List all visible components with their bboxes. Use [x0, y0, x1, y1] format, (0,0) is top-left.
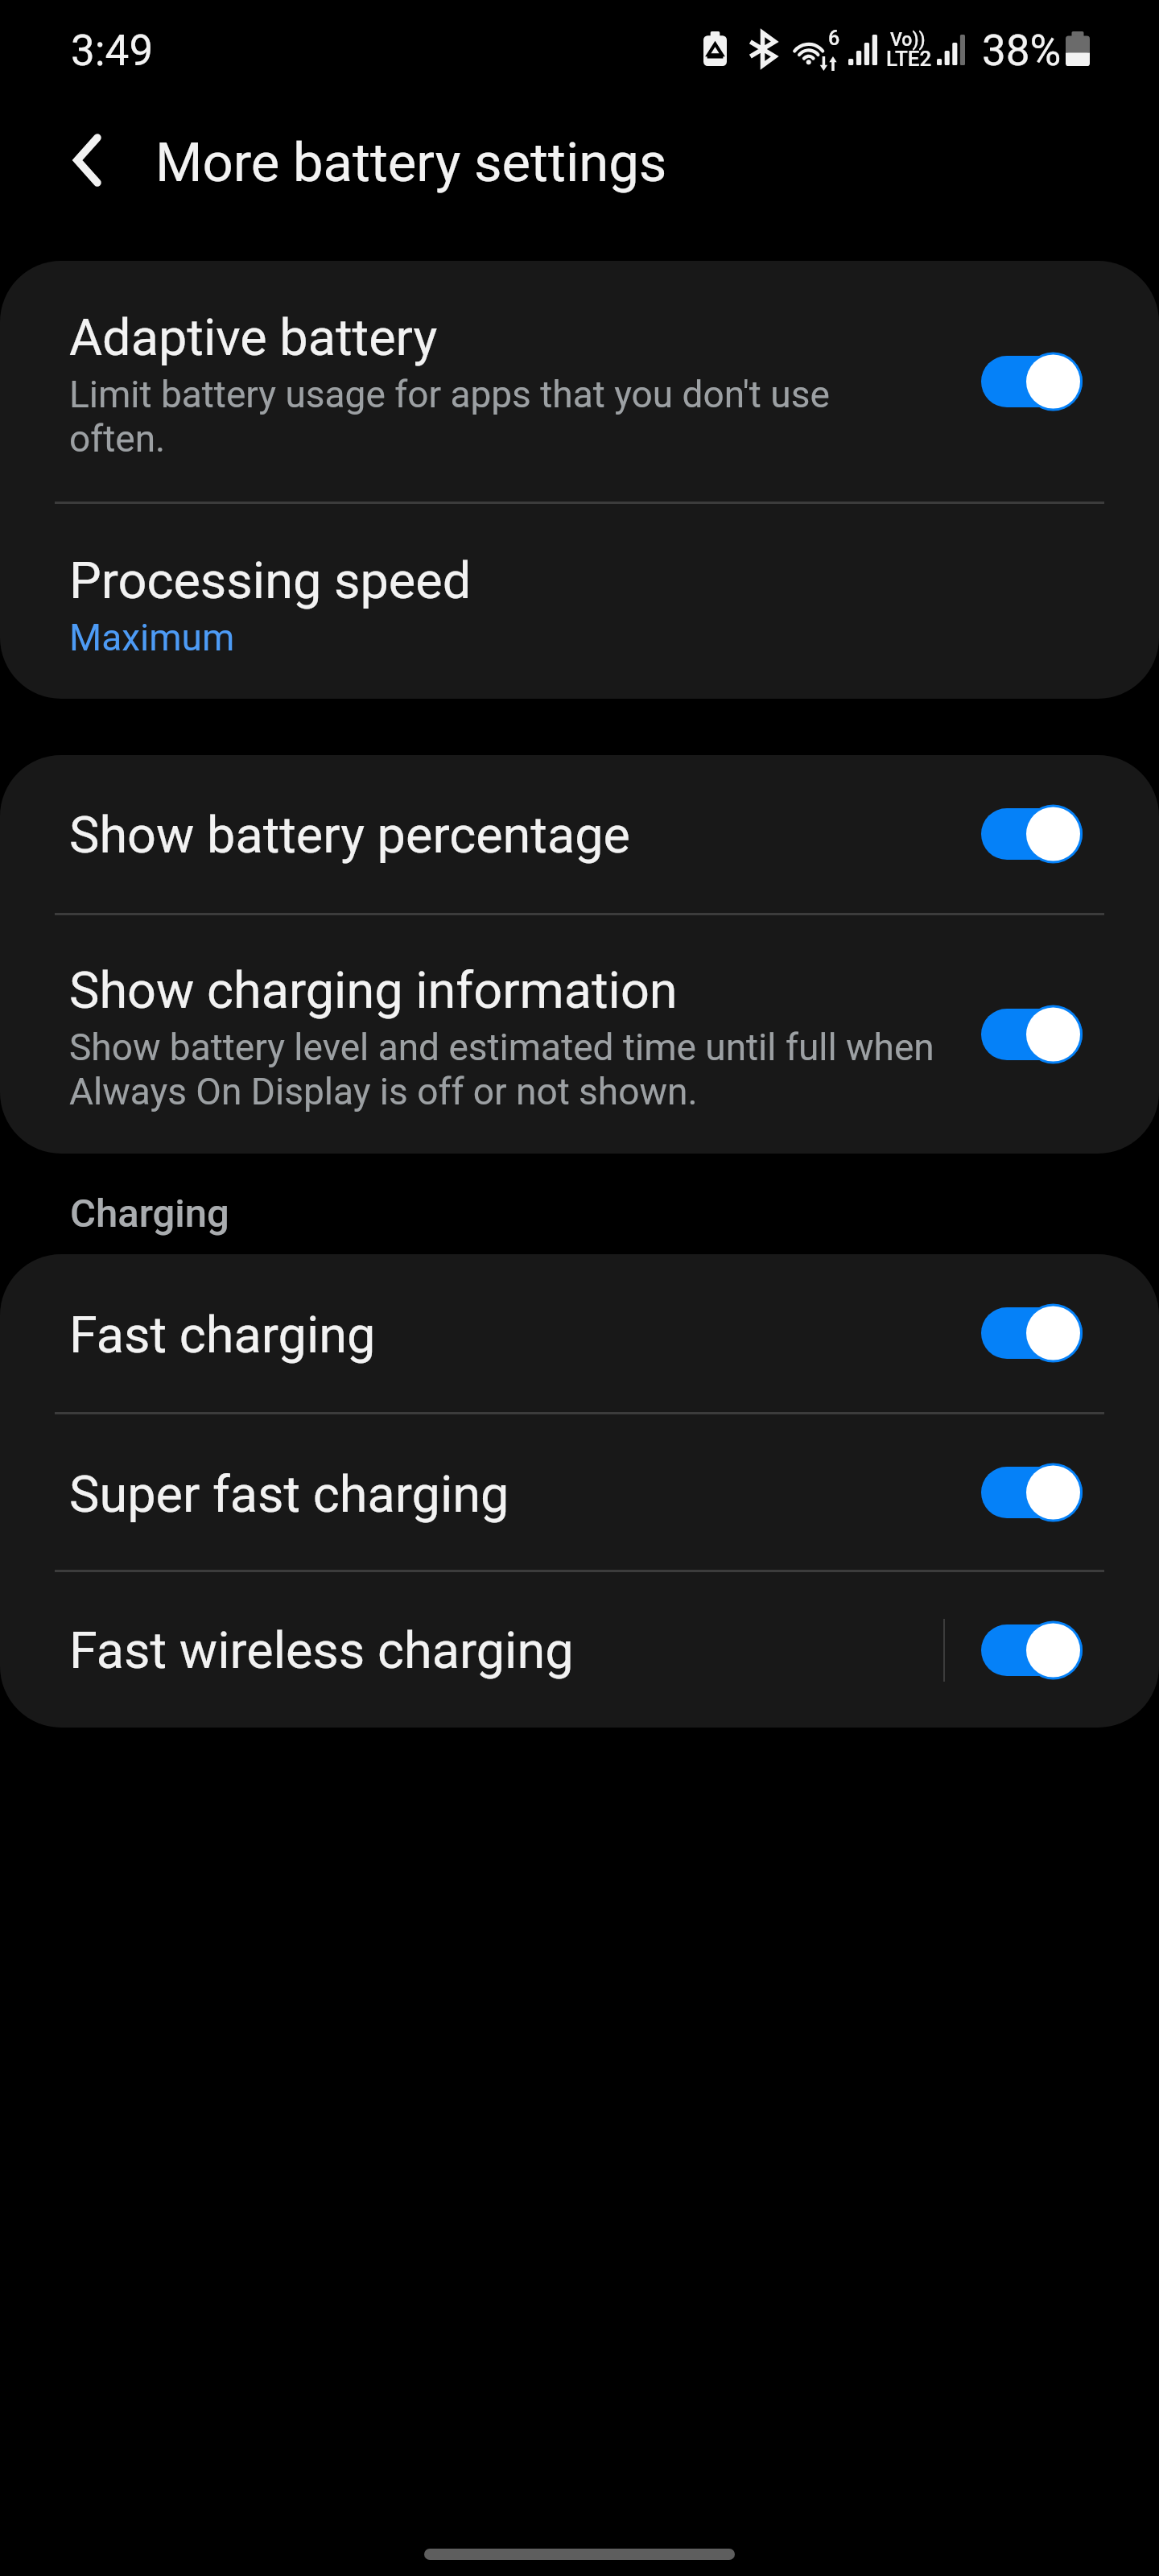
button[interactable]: Adaptive battery [0, 261, 1159, 502]
staticText: Processing speed [69, 551, 472, 610]
staticText: More battery settings [155, 131, 667, 195]
staticText: Vo)) [890, 29, 926, 51]
staticText: Show battery percentage [69, 805, 630, 865]
button[interactable]: Show charging information [0, 915, 1159, 1154]
staticText: 3:49 [71, 26, 154, 76]
button[interactable]: Show battery percentage [0, 755, 1159, 913]
button[interactable]: Toggle setting [981, 1462, 1083, 1523]
staticText: Maximum [69, 615, 235, 659]
staticText: Fast wireless charging [69, 1620, 574, 1680]
staticText: Charging [70, 1195, 229, 1236]
button[interactable]: Super fast charging [0, 1414, 1159, 1570]
staticText: Fast charging [69, 1305, 376, 1364]
staticText: Limit battery usage for apps that you do… [69, 372, 830, 460]
staticText: Show battery level and estimated time un… [69, 1025, 934, 1113]
staticText: 6 [828, 27, 840, 50]
button[interactable]: Fast wireless charging [0, 1572, 1159, 1728]
button[interactable]: Toggle setting [981, 1004, 1083, 1065]
staticText: Super fast charging [69, 1464, 509, 1524]
button[interactable]: Toggle setting [981, 1620, 1083, 1681]
staticText: LTE2 [886, 47, 932, 71]
staticText: Adaptive battery [69, 308, 438, 367]
button[interactable]: Fast charging [0, 1254, 1159, 1412]
button[interactable]: Toggle setting [981, 1302, 1083, 1364]
staticText: Show charging information [69, 960, 678, 1020]
button[interactable]: Processing speed [0, 504, 1159, 699]
staticText: 38% [982, 26, 1062, 76]
button[interactable]: Toggle setting [981, 803, 1083, 865]
button[interactable]: Toggle setting [981, 351, 1083, 412]
button[interactable]: Navigate up [29, 102, 145, 218]
